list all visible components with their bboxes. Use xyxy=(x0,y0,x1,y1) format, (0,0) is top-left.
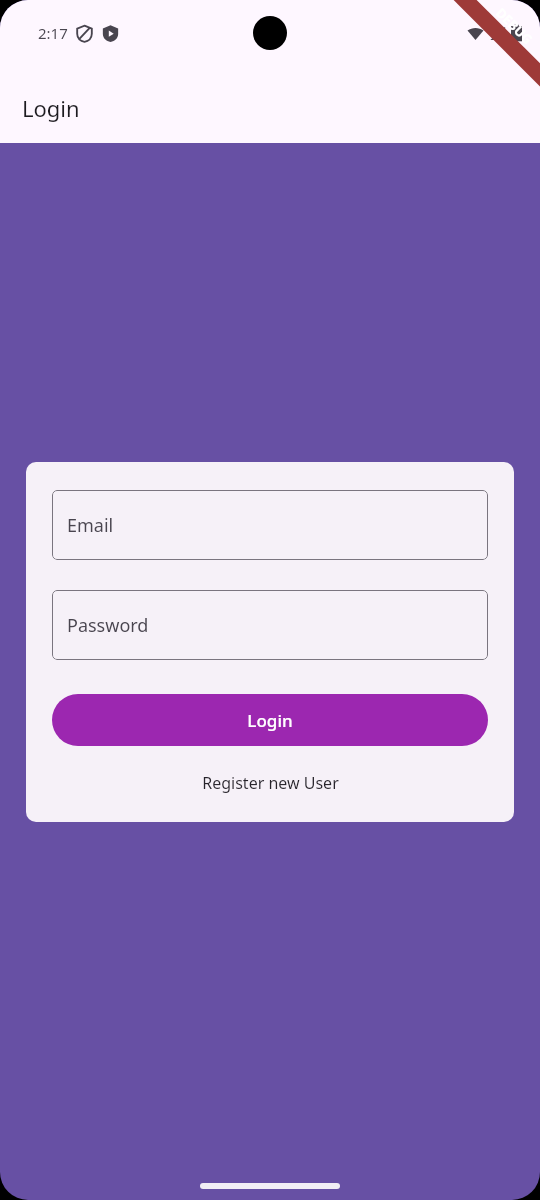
staticText: Register new User xyxy=(202,772,339,794)
button[interactable]: Login xyxy=(52,694,488,746)
button[interactable]: Password xyxy=(52,590,488,660)
staticText: Login xyxy=(247,709,293,732)
button[interactable]: Email xyxy=(52,490,488,560)
button[interactable]: Register new User xyxy=(52,766,488,800)
staticText: Password xyxy=(67,613,149,638)
other: Debug banner xyxy=(444,0,540,96)
staticText: Login xyxy=(22,93,80,123)
staticText: Email xyxy=(67,513,114,538)
staticText: 2:17 xyxy=(38,23,68,43)
staticText: DEBUG xyxy=(492,4,537,48)
